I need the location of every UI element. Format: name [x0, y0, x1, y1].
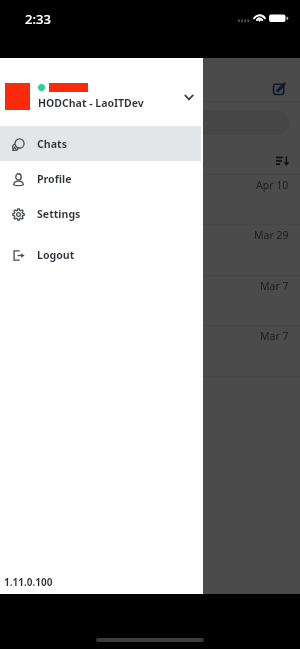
- staticText: Logout: [37, 248, 75, 262]
- button[interactable]: Profile: [0, 161, 201, 196]
- staticText: Settings: [37, 207, 81, 221]
- button[interactable]: Mar 29: [0, 224, 300, 274]
- staticText: HODChat - LaoITDev: [38, 96, 144, 110]
- button[interactable]: Mar 7: [0, 275, 300, 325]
- staticText: Apr 10: [256, 178, 289, 192]
- button[interactable]: Expand account: [175, 58, 203, 126]
- staticText: 1.11.0.100: [4, 575, 53, 589]
- button[interactable]: Apr 10: [0, 174, 300, 224]
- button[interactable]: Mar 7: [0, 325, 300, 375]
- button[interactable]: New chat: [268, 77, 291, 100]
- button[interactable]: Chats: [0, 126, 201, 161]
- button[interactable]: Logout: [0, 237, 201, 272]
- staticText: 2:33: [25, 10, 51, 28]
- staticText: Mar 29: [254, 228, 289, 242]
- staticText: Mar 7: [260, 279, 289, 293]
- staticText: Chats: [37, 137, 67, 151]
- staticText: Mar 7: [260, 329, 289, 343]
- button[interactable]: [11, 110, 289, 135]
- staticText: Profile: [37, 172, 72, 186]
- button[interactable]: Settings: [0, 196, 201, 231]
- button[interactable]: Sort: [269, 148, 295, 174]
- button[interactable]: HODChat - LaoITDev: [0, 58, 203, 126]
